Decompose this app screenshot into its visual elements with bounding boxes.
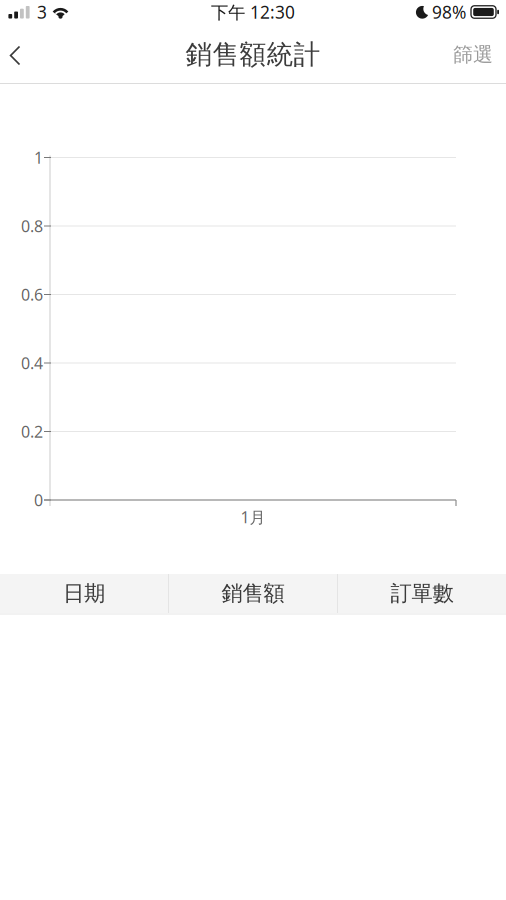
staticText: 篩選 — [453, 42, 493, 67]
staticText: 日期 — [63, 580, 105, 607]
staticText: 下午 12:30 — [211, 0, 295, 23]
button[interactable]: Back — [0, 30, 49, 83]
staticText: 3 — [37, 0, 47, 23]
staticText: 1 — [34, 147, 43, 168]
staticText: 銷售額統計 — [185, 38, 320, 71]
staticText: 訂單數 — [390, 580, 453, 607]
staticText: 銷售額 — [221, 580, 284, 607]
button[interactable]: 銷售額 — [169, 574, 337, 613]
button[interactable]: 日期 — [0, 574, 168, 613]
staticText: 1月 — [240, 506, 265, 528]
staticText: 0.4 — [21, 352, 43, 374]
staticText: 0.8 — [21, 215, 43, 237]
button[interactable]: 篩選 — [453, 30, 506, 83]
staticText: 0.2 — [21, 421, 43, 442]
button[interactable]: 訂單數 — [338, 574, 506, 613]
staticText: 0.6 — [21, 284, 43, 305]
staticText: 98% — [432, 0, 466, 23]
staticText: 0 — [34, 489, 43, 511]
